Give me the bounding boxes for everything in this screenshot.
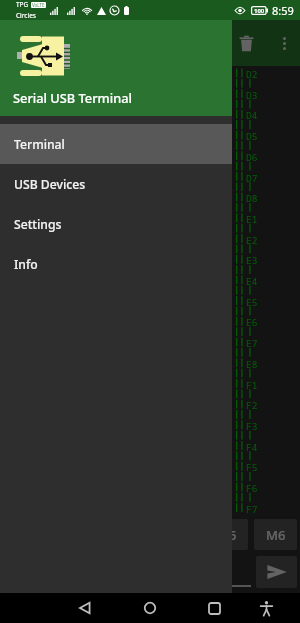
- staticText: E3: [246, 254, 258, 267]
- button[interactable]: Accessibility: [246, 593, 286, 623]
- button[interactable]: Info: [0, 244, 232, 284]
- staticText: Settings: [14, 216, 62, 233]
- staticText: F2: [246, 399, 258, 412]
- button[interactable]: Serial USB Terminal: [0, 20, 232, 593]
- staticText: D7: [246, 172, 258, 185]
- button[interactable]: Settings: [0, 204, 232, 244]
- staticText: F3: [246, 420, 258, 433]
- button[interactable]: Home: [130, 593, 170, 623]
- staticText: D5: [246, 130, 258, 143]
- staticText: F4: [246, 441, 258, 454]
- staticText: E2: [246, 234, 258, 247]
- staticText: Info: [14, 256, 38, 273]
- staticText: F1: [246, 379, 258, 392]
- button[interactable]: More options: [268, 27, 300, 59]
- staticText: E7: [246, 337, 258, 350]
- staticText: 8:59: [272, 3, 294, 18]
- staticText: E4: [246, 275, 258, 288]
- button[interactable]: M6: [254, 519, 297, 550]
- staticText: D8: [246, 192, 258, 205]
- staticText: F6: [246, 482, 258, 495]
- staticText: D4: [246, 109, 258, 122]
- staticText: F5: [246, 461, 258, 474]
- button[interactable]: M5: [205, 519, 248, 550]
- staticText: USB Devices: [14, 176, 86, 193]
- staticText: E1: [246, 213, 258, 226]
- button[interactable]: USB Devices: [0, 164, 232, 204]
- staticText: M5: [217, 526, 237, 544]
- staticText: Terminal: [14, 136, 65, 153]
- button[interactable]: Clear: [228, 25, 264, 61]
- staticText: VoLTE: [32, 2, 45, 8]
- staticText: D3: [246, 89, 258, 102]
- staticText: Circles: [16, 11, 36, 20]
- staticText: Serial USB Terminal: [13, 89, 132, 106]
- staticText: F7: [246, 503, 258, 516]
- staticText: E5: [246, 296, 258, 309]
- button[interactable]: Send: [256, 556, 297, 588]
- staticText: E8: [246, 358, 258, 371]
- staticText: D6: [246, 151, 258, 164]
- staticText: E6: [246, 316, 258, 329]
- staticText: 100: [254, 7, 265, 15]
- button[interactable]: Recents: [194, 593, 234, 623]
- staticText: TPG: [16, 0, 29, 9]
- staticText: D2: [246, 68, 258, 81]
- button[interactable]: Back: [65, 593, 105, 623]
- staticText: M6: [266, 526, 286, 544]
- button[interactable]: Terminal: [0, 124, 232, 164]
